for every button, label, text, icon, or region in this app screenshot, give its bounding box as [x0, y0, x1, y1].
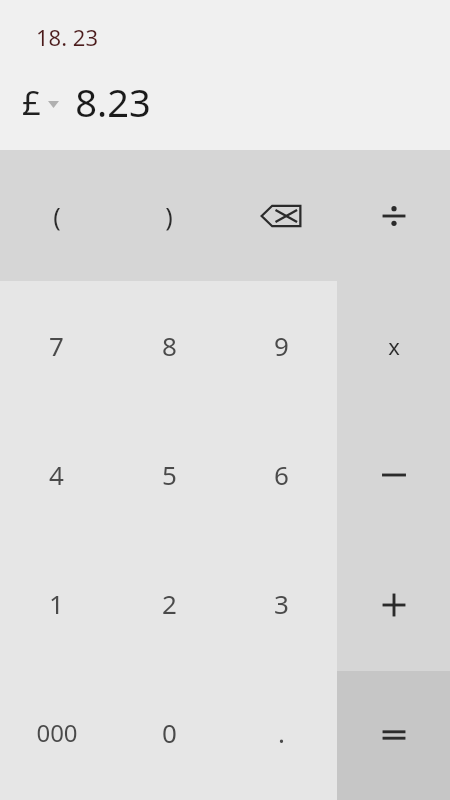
button[interactable]: Equals [337, 670, 450, 799]
staticText: 5 [162, 457, 177, 492]
button[interactable]: 2 [113, 539, 225, 668]
staticText: 7 [49, 328, 64, 363]
staticText: 8 [162, 328, 177, 363]
button[interactable]: Plus [337, 539, 450, 670]
button[interactable]: . [225, 668, 337, 797]
staticText: . [278, 715, 285, 750]
staticText: £ [22, 80, 41, 125]
button[interactable]: 1 [0, 539, 113, 668]
button[interactable]: 0 [113, 668, 225, 797]
staticText: 6 [274, 457, 289, 492]
staticText: 4 [49, 457, 64, 492]
staticText: ( [53, 199, 61, 233]
staticText: 2 [162, 586, 177, 621]
button[interactable]: 4 [0, 410, 113, 539]
staticText: 8.23 [75, 76, 151, 128]
staticText: x [388, 331, 400, 361]
button[interactable]: 3 [225, 539, 337, 668]
staticText: 9 [274, 328, 289, 363]
staticText: 3 [274, 586, 289, 621]
button[interactable]: Divide [337, 150, 450, 281]
button[interactable]: 7 [0, 281, 113, 410]
staticText: 0 [162, 715, 177, 750]
staticText: 000 [36, 716, 78, 749]
button[interactable]: 8 [113, 281, 225, 410]
button[interactable]: 5 [113, 410, 225, 539]
button[interactable]: Minus [337, 410, 450, 539]
button[interactable]: Backspace [225, 150, 337, 281]
button[interactable]: ) [113, 150, 225, 281]
staticText: 18. 23 [36, 22, 98, 52]
button[interactable]: £ [22, 80, 59, 125]
staticText: ) [165, 199, 173, 233]
staticText: 1 [49, 586, 64, 621]
button[interactable]: 6 [225, 410, 337, 539]
button[interactable]: 000 [0, 668, 113, 797]
button[interactable]: 9 [225, 281, 337, 410]
button[interactable]: Multiply [337, 281, 450, 410]
button[interactable]: ( [0, 150, 113, 281]
